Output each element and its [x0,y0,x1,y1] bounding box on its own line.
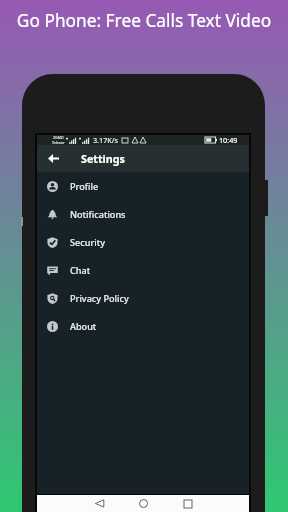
button[interactable]: Privacy Policy [37,284,249,312]
staticText: 2GMD [53,135,64,140]
staticText: Security [70,236,105,248]
staticText: Chat [70,264,91,276]
staticText: 3.17K/s [93,135,118,145]
staticText: Profile [70,180,99,192]
staticText: Privacy Policy [70,292,129,304]
button[interactable]: Home [133,495,153,512]
staticText: About [70,320,97,332]
button[interactable]: Chat [37,256,249,284]
staticText: Telenor [52,140,65,145]
button[interactable]: Security [37,228,249,256]
button[interactable]: Back [40,145,67,172]
staticText: Settings [81,152,125,167]
button[interactable]: About [37,312,249,340]
button[interactable]: Profile [37,172,249,200]
button[interactable]: Back [89,495,109,512]
staticText: Go Phone: Free Calls Text Video [0,9,288,33]
button[interactable]: Recent apps [178,495,198,512]
button[interactable]: Notifications [37,200,249,228]
staticText: Notifications [70,208,126,220]
staticText: 10:49 [219,135,238,145]
